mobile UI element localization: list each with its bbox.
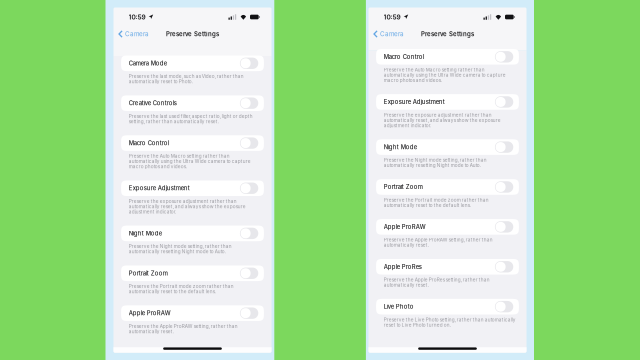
button[interactable]: Camera xyxy=(113,26,153,41)
staticText: automatically reset, and always show the… xyxy=(129,204,246,209)
staticText: Preserve the exposure adjustment rather … xyxy=(129,198,237,204)
staticText: 10:59 xyxy=(383,13,400,21)
staticText: Camera xyxy=(125,30,149,38)
staticText: Camera Mode xyxy=(129,60,167,67)
staticText: Preserve the Night mode setting, rather … xyxy=(129,244,232,249)
button[interactable]: Creative Controls xyxy=(121,95,264,111)
button[interactable]: Macro Control xyxy=(121,135,264,151)
staticText: Creative Controls xyxy=(129,100,177,107)
staticText: Preserve the Apple ProRAW setting, rathe… xyxy=(384,237,493,243)
staticText: Preserve the Portrait mode zoom rather t… xyxy=(384,197,489,203)
staticText: adjustment indicator. xyxy=(384,123,431,128)
staticText: automatically using the Ultra Wide camer… xyxy=(384,72,506,78)
button[interactable]: Live Photo xyxy=(376,299,519,314)
staticText: Preserve the last used filter, aspect ra… xyxy=(129,113,253,119)
staticText: automatically reset to the default lens. xyxy=(384,202,471,208)
staticText: automatically reset, and always show the… xyxy=(384,117,501,123)
staticText: adjustment indicator. xyxy=(129,209,176,214)
staticText: Preserve the Live Photo setting, rather … xyxy=(384,317,516,322)
button[interactable]: Exposure Adjustment xyxy=(376,94,519,110)
staticText: automatically reset. xyxy=(129,329,174,334)
button[interactable]: Apple ProRAW xyxy=(121,305,264,321)
staticText: automatically reset to the default lens. xyxy=(129,289,216,294)
button[interactable]: Portrait Zoom xyxy=(121,265,264,281)
staticText: automatically resetting Night mode to Au… xyxy=(384,162,481,168)
staticText: setting, rather than automatically reset… xyxy=(129,119,219,124)
staticText: automatically reset to Photo. xyxy=(129,79,193,84)
button[interactable]: Portrait Zoom xyxy=(376,179,519,195)
staticText: Preserve the Portrait mode zoom rather t… xyxy=(129,283,234,289)
staticText: Exposure Adjustment xyxy=(129,185,190,192)
staticText: Night Mode xyxy=(384,143,417,151)
staticText: Preserve the Apple ProRes setting, rathe… xyxy=(384,277,490,283)
button[interactable]: Apple ProRes xyxy=(376,259,519,275)
staticText: reset to Live Photo turned on. xyxy=(384,322,451,328)
staticText: Portrait Zoom xyxy=(129,270,168,277)
staticText: automatically reset. xyxy=(384,282,429,288)
staticText: Apple ProRAW xyxy=(384,223,426,230)
staticText: macro photos and videos. xyxy=(384,77,442,83)
staticText: Preserve the Night mode setting, rather … xyxy=(384,157,487,163)
button[interactable]: Camera xyxy=(368,26,408,41)
staticText: Preserve the Auto Macro setting rather t… xyxy=(129,153,230,159)
staticText: Apple ProRAW xyxy=(129,310,171,317)
staticText: Preserve the exposure adjustment rather … xyxy=(384,112,492,118)
button[interactable]: Apple ProRAW xyxy=(376,219,519,235)
staticText: Live Photo xyxy=(384,303,414,310)
staticText: Exposure Adjustment xyxy=(384,98,445,105)
button[interactable]: Exposure Adjustment xyxy=(121,180,264,196)
staticText: Macro Control xyxy=(129,139,169,147)
staticText: macro photos and videos. xyxy=(129,164,187,169)
staticText: Preserve the last mode, such as Video, r… xyxy=(129,73,244,79)
button[interactable]: Macro Control xyxy=(376,49,519,65)
button[interactable]: Night Mode xyxy=(376,139,519,155)
staticText: Camera xyxy=(380,30,404,38)
staticText: Preserve the Apple ProRAW setting, rathe… xyxy=(129,323,238,329)
staticText: automatically using the Ultra Wide camer… xyxy=(129,158,251,164)
button[interactable]: Camera Mode xyxy=(121,55,264,71)
staticText: Preserve Settings xyxy=(166,30,219,38)
staticText: Macro Control xyxy=(384,53,424,60)
staticText: Portrait Zoom xyxy=(384,183,423,190)
staticText: automatically resetting Night mode to Au… xyxy=(129,249,226,254)
staticText: Preserve Settings xyxy=(421,30,474,38)
staticText: Preserve the Auto Macro setting rather t… xyxy=(384,67,485,73)
staticText: 10:59 xyxy=(128,13,145,21)
staticText: automatically reset. xyxy=(384,242,429,248)
staticText: Apple ProRes xyxy=(384,263,422,270)
staticText: Night Mode xyxy=(129,230,162,237)
button[interactable]: Night Mode xyxy=(121,226,264,241)
